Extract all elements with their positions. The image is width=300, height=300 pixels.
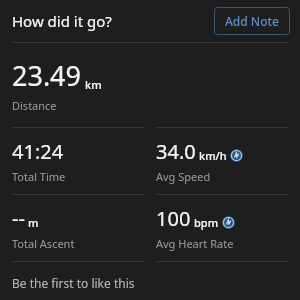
staticText: 34.0 (156, 138, 196, 165)
staticText: bpm (194, 215, 219, 230)
staticText: How did it go? (12, 11, 112, 31)
staticText: 41:24 (12, 138, 64, 165)
other: Recorded by device (230, 149, 243, 162)
staticText: km/h (199, 148, 227, 163)
staticText: km (85, 77, 102, 92)
staticText: Total Time (12, 169, 66, 184)
staticText: Avg Heart Rate (156, 236, 234, 251)
other: Recorded by device (222, 216, 235, 229)
staticText: m (28, 215, 39, 230)
staticText: -- (12, 205, 25, 232)
staticText: 23.49 (12, 57, 82, 94)
staticText: Total Ascent (12, 236, 75, 251)
button[interactable]: Add Note (214, 7, 290, 35)
staticText: 100 (156, 205, 191, 232)
staticText: Distance (12, 98, 57, 113)
staticText: Add Note (225, 13, 279, 29)
staticText: Avg Speed (156, 169, 211, 184)
button[interactable]: Be the first to like this (0, 275, 300, 291)
